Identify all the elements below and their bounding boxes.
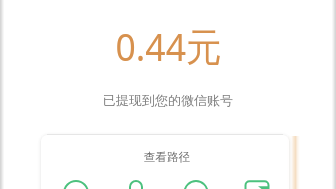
staticText: 已提现到您的微信账号 — [103, 92, 233, 108]
staticText: 查看路径 — [144, 150, 190, 164]
other: Time — [61, 180, 91, 189]
other: Message — [242, 180, 272, 189]
other: Account — [121, 180, 151, 189]
staticText: 0.44元 — [115, 19, 222, 72]
other: Processing — [181, 180, 211, 189]
button[interactable]: 查看路径 — [41, 135, 289, 189]
